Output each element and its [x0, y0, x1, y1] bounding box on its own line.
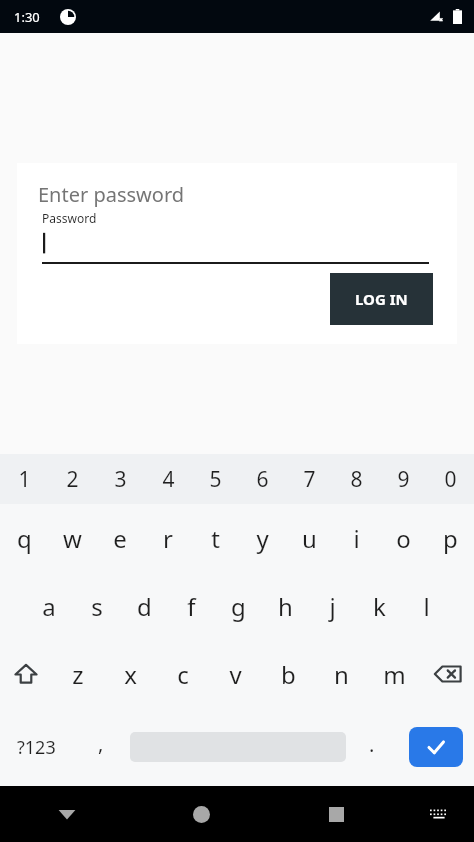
button[interactable]: i [333, 504, 380, 572]
button[interactable]: c [156, 640, 209, 708]
button[interactable]: 9 [380, 454, 427, 504]
button[interactable]: v [209, 640, 262, 708]
button[interactable]: 0 [427, 454, 474, 504]
button[interactable]: Switch keyboard [404, 786, 474, 842]
button[interactable]: q [0, 504, 48, 572]
button[interactable]: r [144, 504, 192, 572]
button[interactable]: y [239, 504, 286, 572]
button[interactable]: m [368, 640, 421, 708]
staticText: l [423, 590, 430, 623]
staticText: e [113, 522, 127, 555]
button[interactable]: t [192, 504, 239, 572]
staticText: c [177, 658, 189, 691]
staticText: 2 [66, 465, 79, 494]
button[interactable]: 1 [0, 454, 48, 504]
button[interactable]: u [286, 504, 333, 572]
button[interactable]: f [168, 572, 215, 640]
button[interactable]: b [262, 640, 315, 708]
button[interactable] [42, 226, 429, 264]
button[interactable]: ?123 [0, 708, 72, 786]
staticText: b [281, 658, 296, 691]
button[interactable]: o [380, 504, 427, 572]
staticText: , [98, 730, 104, 757]
button[interactable]: z [52, 640, 104, 708]
staticText: s [91, 590, 103, 623]
staticText: 1 [18, 465, 31, 494]
staticText: 6 [256, 465, 269, 494]
staticText: 4 [162, 465, 175, 494]
button[interactable]: Back [0, 786, 134, 842]
staticText: LOG IN [355, 289, 408, 309]
staticText: r [163, 522, 173, 555]
staticText: 5 [209, 465, 222, 494]
staticText: Enter password [38, 181, 185, 208]
staticText: k [373, 590, 386, 623]
staticText: v [229, 658, 242, 691]
staticText: i [353, 522, 360, 555]
button[interactable]: x [104, 640, 156, 708]
button[interactable]: s [73, 572, 121, 640]
button[interactable]: 2 [48, 454, 96, 504]
staticText: . [369, 731, 375, 758]
staticText: Password [42, 210, 97, 226]
button[interactable]: w [48, 504, 96, 572]
staticText: z [72, 658, 84, 691]
button[interactable]: . [346, 708, 398, 786]
button[interactable]: Backspace [421, 640, 474, 708]
button[interactable]: Enter [409, 727, 463, 767]
button[interactable]: LOG IN [330, 273, 433, 325]
button[interactable]: 8 [333, 454, 380, 504]
staticText: d [137, 590, 152, 623]
button[interactable]: n [315, 640, 368, 708]
button[interactable]: 7 [286, 454, 333, 504]
button[interactable]: h [262, 572, 309, 640]
staticText: w [63, 522, 82, 555]
staticText: 3 [114, 465, 127, 494]
button[interactable]: 3 [96, 454, 144, 504]
button[interactable]: , [72, 708, 130, 786]
staticText: q [17, 522, 32, 555]
staticText: g [231, 590, 246, 623]
button[interactable]: 6 [239, 454, 286, 504]
button[interactable]: 5 [192, 454, 239, 504]
button[interactable]: Shift [0, 640, 52, 708]
button[interactable]: d [121, 572, 168, 640]
staticText: o [396, 522, 411, 555]
staticText: j [329, 590, 336, 623]
staticText: y [256, 522, 269, 555]
staticText: 1:30 [14, 8, 40, 26]
staticText: ?123 [17, 735, 56, 760]
staticText: u [302, 522, 317, 555]
staticText: f [187, 590, 196, 623]
staticText: 8 [350, 465, 363, 494]
staticText: m [383, 658, 406, 691]
button[interactable]: a [25, 572, 73, 640]
staticText: p [443, 522, 458, 555]
staticText: t [211, 522, 220, 555]
button[interactable]: k [356, 572, 403, 640]
button[interactable]: p [427, 504, 474, 572]
staticText: a [42, 590, 56, 623]
button[interactable]: Recents [269, 786, 404, 842]
button[interactable]: l [403, 572, 450, 640]
button[interactable]: j [309, 572, 356, 640]
staticText: h [278, 590, 293, 623]
button[interactable]: e [96, 504, 144, 572]
button[interactable]: 4 [144, 454, 192, 504]
staticText: n [334, 658, 349, 691]
button[interactable]: Home [134, 786, 269, 842]
button[interactable]: g [215, 572, 262, 640]
staticText: 7 [303, 465, 316, 494]
staticText: x [124, 658, 137, 691]
staticText: 9 [397, 465, 410, 494]
staticText: 0 [444, 465, 457, 494]
